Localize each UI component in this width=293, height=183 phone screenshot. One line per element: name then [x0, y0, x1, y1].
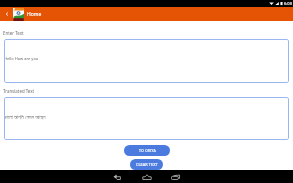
staticText: Enter Text [3, 30, 24, 36]
staticText: Hello How are you [4, 56, 39, 61]
button[interactable]: Back [108, 170, 127, 183]
staticText: হ্যালো আপনি কেমন আছেন [4, 114, 46, 121]
button[interactable]: Recent apps [166, 170, 185, 183]
button[interactable]: Back [3, 10, 11, 18]
button[interactable]: TO ORIYA [124, 145, 170, 156]
button[interactable]: Hello How are you [4, 39, 289, 83]
staticText: 6:00 [284, 1, 292, 6]
staticText: Home [27, 11, 42, 18]
button[interactable]: CLEAR TEXT [130, 159, 163, 170]
staticText: Translated Text [3, 88, 35, 94]
staticText: CLEAR TEXT [136, 162, 158, 167]
button[interactable]: Home [137, 170, 156, 183]
staticText: TO ORIYA [139, 148, 156, 153]
button[interactable]: হ্যালো আপনি কেমন আছেন [4, 97, 289, 140]
